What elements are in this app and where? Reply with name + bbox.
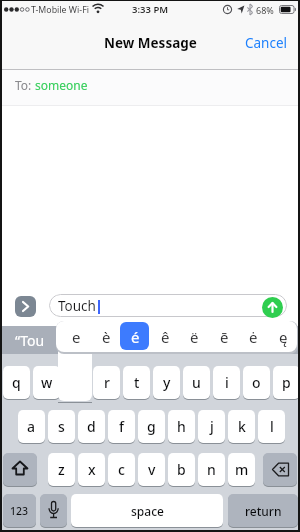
button[interactable]: Cancel: [240, 33, 292, 53]
button[interactable]: e: [63, 323, 89, 350]
staticText: 123: [10, 504, 29, 518]
staticText: o: [252, 373, 261, 392]
staticText: To:: [15, 77, 32, 93]
staticText: f: [119, 417, 124, 436]
staticText: ē: [220, 327, 229, 347]
staticText: g: [147, 417, 156, 436]
button[interactable]: o: [243, 366, 270, 399]
staticText: l: [270, 417, 274, 436]
staticText: b: [177, 460, 186, 479]
staticText: e: [72, 327, 81, 347]
button[interactable]: [263, 453, 297, 486]
staticText: é: [131, 327, 140, 347]
button[interactable]: a: [18, 410, 45, 443]
staticText: j: [210, 417, 214, 436]
staticText: ê: [161, 327, 170, 347]
button[interactable]: [15, 296, 36, 317]
button[interactable]: ë: [181, 323, 207, 350]
button[interactable]: t: [123, 366, 150, 399]
button[interactable]: j: [198, 410, 225, 443]
staticText: k: [238, 417, 246, 436]
button[interactable]: h: [168, 410, 195, 443]
button[interactable]: [0, 70, 300, 105]
staticText: 68%: [256, 4, 274, 16]
button[interactable]: x: [78, 453, 105, 486]
staticText: space: [131, 503, 164, 519]
button[interactable]: b: [168, 453, 195, 486]
button[interactable]: n: [198, 453, 225, 486]
staticText: x: [88, 460, 96, 479]
staticText: è: [102, 327, 111, 347]
button[interactable]: q: [3, 366, 30, 399]
staticText: s: [58, 417, 65, 436]
button[interactable]: v: [138, 453, 165, 486]
button[interactable]: è: [93, 323, 119, 350]
staticText: h: [177, 417, 186, 436]
button[interactable]: space: [71, 494, 223, 527]
staticText: v: [148, 460, 156, 479]
staticText: a: [27, 417, 36, 436]
button[interactable]: s: [48, 410, 75, 443]
button[interactable]: i: [213, 366, 240, 399]
button[interactable]: ę: [270, 323, 296, 350]
button[interactable]: w: [33, 366, 60, 399]
staticText: r: [104, 373, 110, 392]
staticText: ę: [279, 327, 288, 347]
button[interactable]: c: [108, 453, 135, 486]
button[interactable]: m: [228, 453, 255, 486]
staticText: someone: [35, 77, 88, 93]
staticText: ë: [190, 327, 199, 347]
button[interactable]: d: [78, 410, 105, 443]
staticText: p: [282, 373, 291, 392]
staticText: n: [207, 460, 216, 479]
staticText: t: [134, 373, 140, 392]
staticText: u: [192, 373, 201, 392]
button[interactable]: z: [48, 453, 75, 486]
button[interactable]: return: [228, 494, 298, 527]
staticText: ė: [249, 327, 258, 347]
staticText: Cancel: [245, 34, 288, 52]
button[interactable]: f: [108, 410, 135, 443]
staticText: w: [41, 373, 53, 392]
button[interactable]: u: [183, 366, 210, 399]
button[interactable]: [262, 297, 283, 318]
staticText: return: [245, 503, 282, 519]
staticText: m: [235, 460, 249, 479]
button[interactable]: k: [228, 410, 255, 443]
button[interactable]: y: [153, 366, 180, 399]
staticText: c: [118, 460, 125, 479]
staticText: i: [225, 373, 229, 392]
button[interactable]: l: [258, 410, 285, 443]
button[interactable]: [3, 453, 37, 486]
button[interactable]: g: [138, 410, 165, 443]
staticText: z: [58, 460, 65, 479]
button[interactable]: r: [93, 366, 120, 399]
button[interactable]: é: [122, 323, 148, 350]
button[interactable]: ė: [240, 323, 266, 350]
button[interactable]: ē: [211, 323, 237, 350]
staticText: q: [12, 373, 21, 392]
staticText: “Tou: [15, 331, 45, 350]
staticText: Touch: [58, 297, 96, 315]
staticText: y: [163, 373, 171, 392]
button[interactable]: 123: [3, 494, 36, 527]
staticText: New Message: [104, 34, 197, 52]
staticText: T-Mobile Wi-Fi: [31, 4, 89, 16]
staticText: 3:33 PM: [132, 3, 169, 16]
button[interactable]: p: [273, 366, 300, 399]
button[interactable]: [40, 494, 67, 527]
button[interactable]: ê: [152, 323, 178, 350]
staticText: d: [87, 417, 96, 436]
